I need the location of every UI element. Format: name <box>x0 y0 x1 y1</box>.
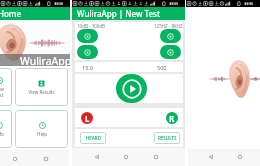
button[interactable]: Recents <box>150 151 161 162</box>
staticText: 10dB - 100dB <box>77 23 106 29</box>
button[interactable]: View Results <box>15 68 68 106</box>
button[interactable]: Increase <box>160 29 181 43</box>
button[interactable]: Decrease <box>77 45 98 59</box>
staticText: Home <box>0 8 22 19</box>
button[interactable]: Home <box>234 151 245 162</box>
staticText: R <box>169 113 175 124</box>
button[interactable]: Home <box>9 153 20 164</box>
staticText: View Results <box>28 89 55 95</box>
staticText: RESULTS <box>158 135 177 141</box>
staticText: Help <box>37 131 47 137</box>
staticText: WuliraApp | New Test <box>77 8 160 19</box>
staticText: Info <box>0 131 4 137</box>
button[interactable]: Back <box>205 151 216 162</box>
staticText: New Test <box>0 86 4 98</box>
button[interactable]: New Test <box>0 68 12 106</box>
staticText: 15.0 <box>82 64 93 71</box>
staticText: HEARD <box>86 135 101 141</box>
button[interactable]: Decrease <box>160 45 181 59</box>
staticText: L <box>85 113 90 124</box>
button[interactable]: HEARD <box>80 132 106 144</box>
staticText: 125HZ - 8KHZ <box>154 23 183 29</box>
staticText: 500 <box>157 64 167 71</box>
button[interactable]: Home <box>120 151 131 162</box>
staticText: WuliraApp <box>20 54 72 66</box>
button[interactable]: Help <box>15 110 68 148</box>
button[interactable]: Recents <box>40 153 51 164</box>
button[interactable]: R <box>166 112 178 124</box>
button[interactable]: Back <box>91 151 102 162</box>
button[interactable]: L <box>81 112 93 124</box>
button[interactable]: Increase <box>77 29 98 43</box>
button[interactable]: Play <box>116 74 147 103</box>
button[interactable]: Info <box>0 110 12 148</box>
button[interactable]: RESULTS <box>154 132 180 144</box>
